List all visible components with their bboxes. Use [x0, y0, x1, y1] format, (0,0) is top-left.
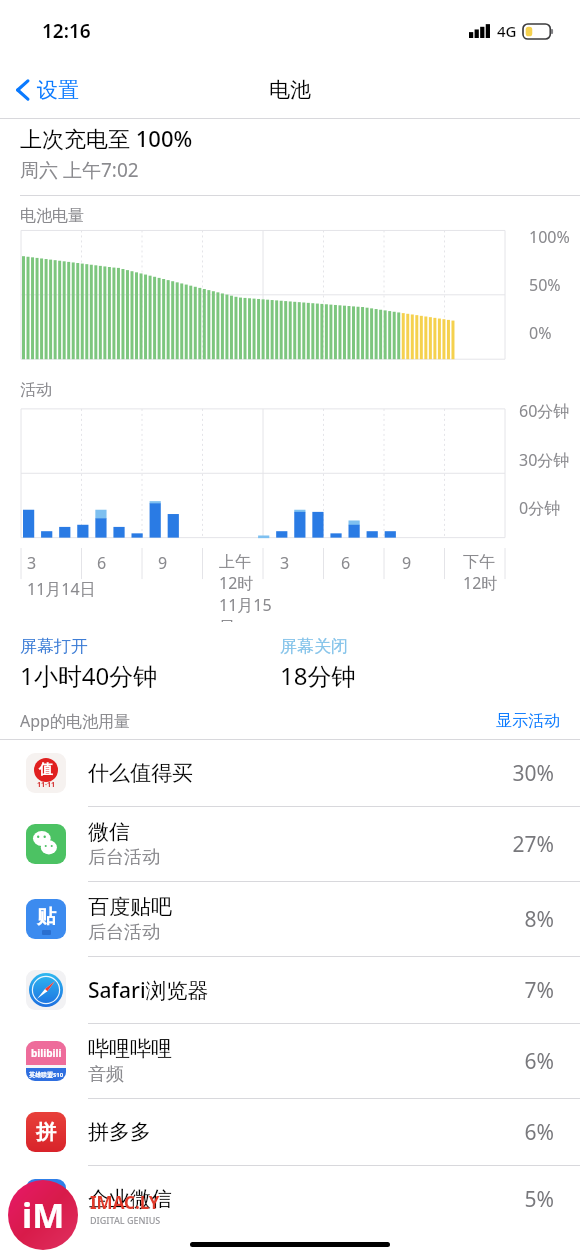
staticText: 5%	[524, 1185, 554, 1214]
staticText: 音频	[88, 1063, 124, 1086]
staticText: 11·11	[37, 780, 55, 790]
staticText: 6	[341, 552, 351, 574]
staticText: 0%	[529, 322, 552, 344]
staticText: 贴	[37, 905, 56, 929]
staticText: 11月15日	[219, 594, 280, 622]
staticText: 60分钟	[519, 400, 570, 422]
staticText: 30%	[512, 759, 554, 788]
staticText: 0分钟	[519, 497, 561, 519]
staticText: 后台活动	[88, 921, 160, 944]
staticText: 100%	[529, 226, 570, 248]
staticText: bilibili	[31, 1046, 62, 1060]
staticText: Safari浏览器	[88, 976, 209, 1005]
staticText: 9	[158, 552, 168, 574]
staticText: App的电池用量	[20, 710, 496, 732]
staticText: 9	[402, 552, 412, 574]
staticText: 活动	[20, 380, 52, 400]
staticText: 微信	[88, 819, 130, 845]
button[interactable]: Safari浏览器	[0, 956, 580, 1023]
staticText: 1小时40分钟	[20, 659, 158, 692]
staticText: 18分钟	[280, 659, 356, 692]
staticText: 哔哩哔哩	[88, 1036, 172, 1062]
staticText: 上次充电至 100%	[20, 123, 193, 153]
staticText: 12时	[463, 572, 498, 594]
staticText: 屏幕打开	[20, 636, 88, 657]
staticText: 电池电量	[20, 206, 84, 226]
staticText: DIGITAL GENIUS	[90, 1214, 161, 1226]
staticText: 值	[39, 761, 53, 779]
staticText: 11月14日	[27, 578, 96, 600]
button[interactable]: 企业微信	[0, 1165, 580, 1232]
button[interactable]: 贴	[0, 881, 580, 956]
staticText: 4G	[497, 21, 517, 41]
staticText: 后台活动	[88, 846, 160, 869]
button[interactable]: 拼	[0, 1098, 580, 1165]
staticText: 3	[27, 552, 37, 574]
staticText: 7%	[524, 976, 554, 1005]
staticText: 周六 上午7:02	[20, 157, 139, 183]
staticText: 英雄联盟S10	[29, 1071, 64, 1079]
button[interactable]: 微信	[0, 806, 580, 881]
staticText: 6%	[524, 1047, 554, 1076]
staticText: 上午	[219, 552, 251, 572]
staticText: 27%	[512, 830, 554, 859]
staticText: 电池	[269, 77, 311, 103]
staticText: 下午	[463, 552, 495, 572]
staticText: 30分钟	[519, 449, 570, 471]
staticText: 设置	[37, 77, 79, 103]
staticText: 6	[97, 552, 107, 574]
staticText: 6%	[524, 1118, 554, 1147]
staticText: 什么值得买	[88, 760, 193, 786]
button[interactable]: bilibili	[0, 1023, 580, 1098]
staticText: 显示活动	[496, 711, 560, 731]
staticText: 拼多多	[88, 1119, 151, 1145]
staticText: IMAC.LY	[90, 1191, 160, 1214]
staticText: iM	[22, 1192, 65, 1238]
staticText: 屏幕关闭	[280, 636, 348, 657]
staticText: 百度贴吧	[88, 894, 172, 920]
staticText: 12时	[219, 572, 254, 594]
button[interactable]: 值	[0, 740, 580, 806]
button[interactable]: 显示活动	[496, 711, 560, 731]
staticText: 50%	[529, 274, 561, 296]
staticText: 企业微信	[88, 1186, 172, 1212]
button[interactable]: 设置	[0, 71, 89, 109]
staticText: 8%	[524, 905, 554, 934]
staticText: 12:16	[42, 18, 91, 44]
staticText: 3	[280, 552, 290, 574]
staticText: 拼	[36, 1120, 56, 1145]
